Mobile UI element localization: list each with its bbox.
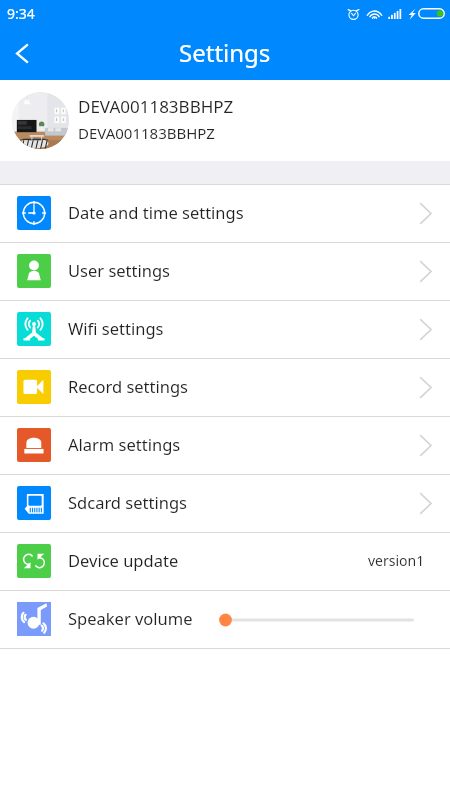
button[interactable]: Back <box>0 26 44 80</box>
button[interactable]: DEVA001183BBHPZ <box>0 80 450 161</box>
staticText: Record settings <box>68 375 189 397</box>
staticText: version1 <box>368 551 425 570</box>
staticText: Settings <box>179 36 271 69</box>
staticText: Wifi settings <box>68 317 164 339</box>
staticText: Sdcard settings <box>68 491 187 513</box>
button[interactable]: Alarm settings <box>0 417 450 474</box>
button[interactable]: Record settings <box>0 359 450 416</box>
staticText: DEVA001183BBHPZ <box>78 123 215 143</box>
staticText: Device update <box>68 549 179 571</box>
button[interactable]: Speaker volume slider <box>219 605 414 635</box>
staticText: Alarm settings <box>68 433 181 455</box>
button[interactable]: Sdcard settings <box>0 475 450 532</box>
button[interactable]: Date and time settings <box>0 185 450 242</box>
staticText: 9:34 <box>7 4 35 23</box>
staticText: User settings <box>68 259 171 281</box>
button[interactable]: Device update <box>0 533 450 590</box>
staticText: Date and time settings <box>68 201 244 223</box>
staticText: Speaker volume <box>68 607 193 629</box>
button[interactable]: Wifi settings <box>0 301 450 358</box>
button[interactable]: User settings <box>0 243 450 300</box>
staticText: DEVA001183BBHPZ <box>78 95 234 118</box>
